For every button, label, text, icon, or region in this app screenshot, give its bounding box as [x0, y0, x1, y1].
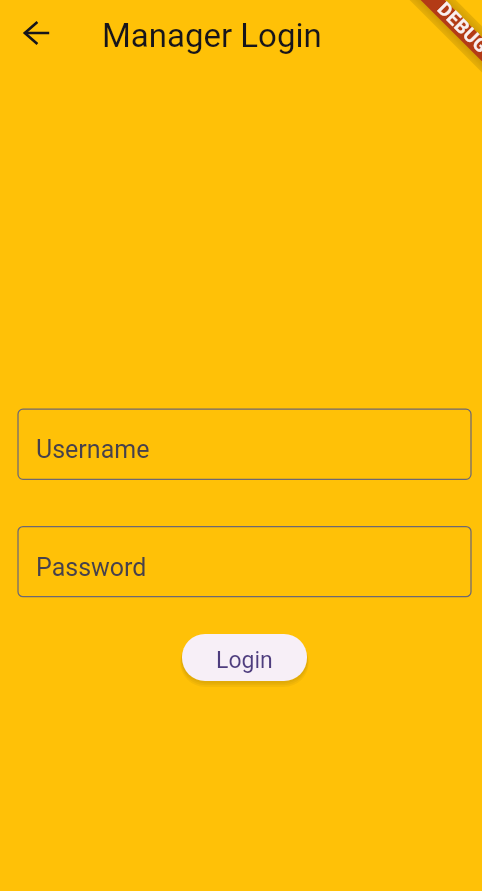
- staticText: Username: [36, 435, 150, 464]
- button[interactable]: Username: [18, 409, 471, 479]
- staticText: Login: [216, 647, 273, 674]
- button[interactable]: Back: [13, 9, 61, 57]
- staticText: Password: [36, 553, 147, 582]
- staticText: DEBUG: [433, 0, 482, 57]
- button[interactable]: Login: [182, 634, 307, 681]
- staticText: Manager Login: [102, 16, 322, 55]
- button[interactable]: Password: [18, 527, 471, 597]
